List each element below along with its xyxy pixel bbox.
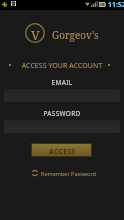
staticText: ACCESS: [49, 147, 76, 157]
staticText: Gorgeov's: [52, 28, 99, 42]
button[interactable]: Remember Password: [31, 169, 96, 177]
staticText: EMAIL: [0, 78, 124, 87]
staticText: ACCESS YOUR ACCOUNT: [0, 61, 124, 71]
staticText: Remember Password: [41, 170, 96, 177]
staticText: 11:52: [108, 0, 124, 10]
staticText: PASSWORD: [0, 109, 124, 118]
staticText: V: [31, 26, 40, 44]
button[interactable]: ACCESS: [31, 143, 92, 157]
